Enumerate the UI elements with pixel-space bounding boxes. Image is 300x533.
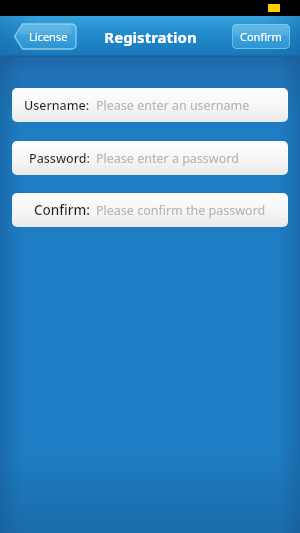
- staticText: Confirm: [240, 29, 282, 44]
- staticText: Please enter a password: [96, 150, 239, 167]
- button[interactable]: Username:: [12, 88, 288, 122]
- button[interactable]: License: [14, 24, 76, 49]
- staticText: Registration: [104, 27, 197, 47]
- button[interactable]: Confirm: [232, 24, 290, 49]
- staticText: Password:: [29, 150, 90, 167]
- staticText: Username:: [24, 97, 90, 114]
- staticText: Please enter an username: [96, 97, 250, 114]
- staticText: Confirm:: [34, 201, 90, 219]
- button[interactable]: Password:: [12, 141, 288, 175]
- button[interactable]: Confirm:: [12, 193, 288, 227]
- staticText: Please confirm the password: [96, 202, 266, 219]
- staticText: License: [29, 29, 68, 44]
